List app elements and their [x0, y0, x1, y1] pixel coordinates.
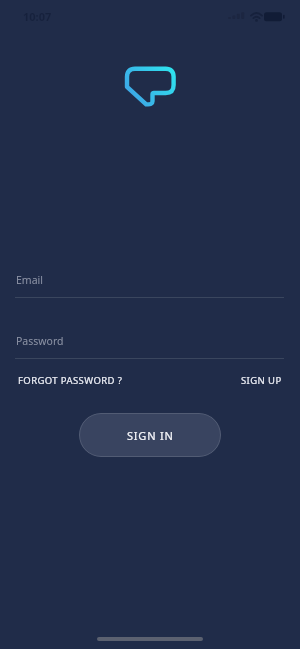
button[interactable]: FORGOT PASSWORD ? — [16, 372, 125, 389]
staticText: SIGN UP — [241, 374, 282, 387]
button[interactable]: Password — [15, 334, 284, 359]
staticText: 10:07 — [23, 9, 52, 24]
staticText: Password — [16, 334, 64, 348]
staticText: SIGN IN — [127, 428, 174, 443]
button[interactable]: SIGN UP — [239, 372, 284, 389]
button[interactable]: Email — [15, 273, 284, 298]
staticText: Email — [16, 273, 43, 287]
button[interactable]: SIGN IN — [79, 413, 221, 457]
staticText: FORGOT PASSWORD ? — [18, 374, 123, 387]
